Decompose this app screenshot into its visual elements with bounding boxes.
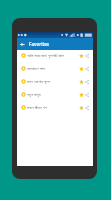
button[interactable]: সকল জীবন পথ: [17, 101, 93, 114]
button[interactable]: Back: [17, 38, 27, 50]
button[interactable]: Share: [84, 101, 90, 114]
button[interactable]: Share: [84, 62, 90, 75]
button[interactable]: Favourite: [79, 88, 84, 101]
button[interactable]: Favourite: [79, 101, 84, 114]
staticText: সখন কোথায় ভুলে: [27, 79, 79, 85]
button[interactable]: অসাধারণ ভাল: [17, 62, 93, 75]
button[interactable]: সখন কোথায় ভুলে: [17, 75, 93, 88]
button[interactable]: আমি সবার জন্য শুভেচ্ছা জান: [17, 49, 93, 62]
staticText: আমি সবার জন্য শুভেচ্ছা জান: [27, 53, 79, 59]
button[interactable]: Share: [84, 49, 90, 62]
button[interactable]: Share: [84, 75, 90, 88]
staticText: Favorites: [29, 41, 50, 47]
staticText: অসাধারণ ভাল: [27, 66, 79, 72]
button[interactable]: Favourite: [79, 75, 84, 88]
button[interactable]: Favourite: [79, 62, 84, 75]
staticText: নতুন মানুষ: [27, 92, 79, 98]
button[interactable]: নতুন মানুষ: [17, 88, 93, 101]
staticText: সকল জীবন পথ: [27, 105, 79, 111]
button[interactable]: Share: [84, 88, 90, 101]
button[interactable]: Favourite: [79, 49, 84, 62]
